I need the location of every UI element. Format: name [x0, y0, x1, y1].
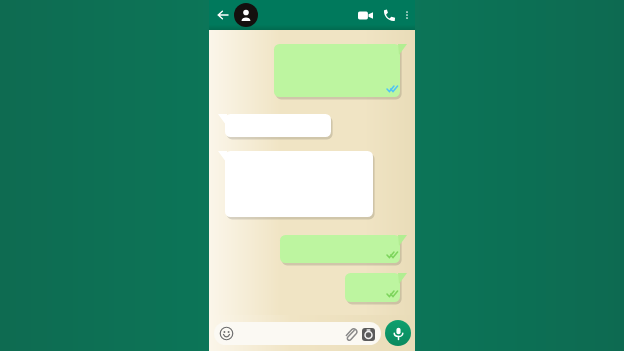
button[interactable] [218, 151, 373, 217]
button[interactable]: Record voice message [385, 320, 411, 346]
button[interactable]: Back [213, 5, 233, 25]
button[interactable] [274, 44, 407, 97]
button[interactable]: Emoji [219, 326, 234, 341]
button[interactable]: Contact profile [234, 3, 258, 27]
button[interactable] [345, 273, 407, 302]
button[interactable]: Emoji [214, 322, 381, 345]
button[interactable]: Voice call [378, 4, 400, 26]
button[interactable]: Camera [360, 326, 376, 342]
button[interactable] [280, 235, 407, 263]
button[interactable]: Attach [342, 326, 358, 342]
button[interactable]: Video call [354, 4, 376, 26]
button[interactable] [218, 114, 331, 137]
button[interactable]: More options [400, 8, 414, 22]
